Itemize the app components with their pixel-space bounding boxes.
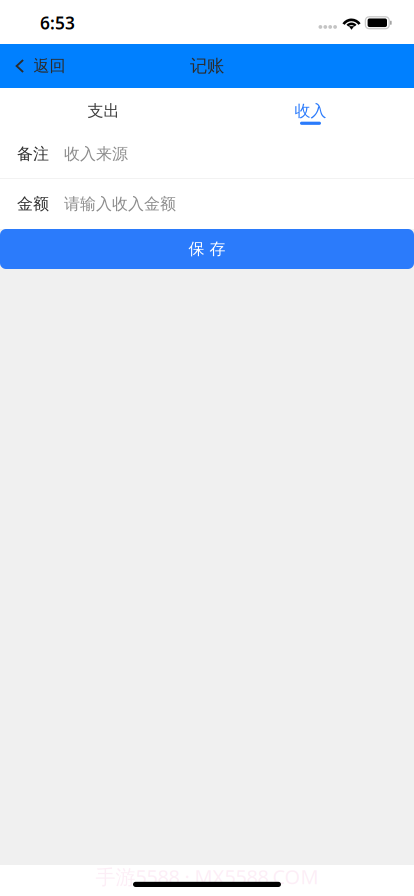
staticText: 备注 bbox=[17, 144, 49, 164]
staticText: 手游5588 · MX5588.COM bbox=[95, 863, 318, 890]
button[interactable]: 支出 bbox=[0, 88, 207, 130]
staticText: 保 存 bbox=[188, 239, 225, 259]
staticText: 支出 bbox=[87, 101, 119, 121]
staticText: 收入来源 bbox=[64, 144, 128, 164]
button[interactable]: 保 存 bbox=[0, 229, 414, 269]
staticText: 6:53 bbox=[40, 11, 75, 34]
button[interactable]: 返回 bbox=[0, 44, 78, 88]
staticText: 收入 bbox=[294, 101, 326, 121]
button[interactable]: 收入 bbox=[207, 88, 414, 130]
staticText: 记账 bbox=[190, 55, 224, 77]
staticText: 金额 bbox=[17, 194, 49, 214]
staticText: 返回 bbox=[34, 56, 66, 76]
staticText: 请输入收入金额 bbox=[64, 194, 176, 214]
